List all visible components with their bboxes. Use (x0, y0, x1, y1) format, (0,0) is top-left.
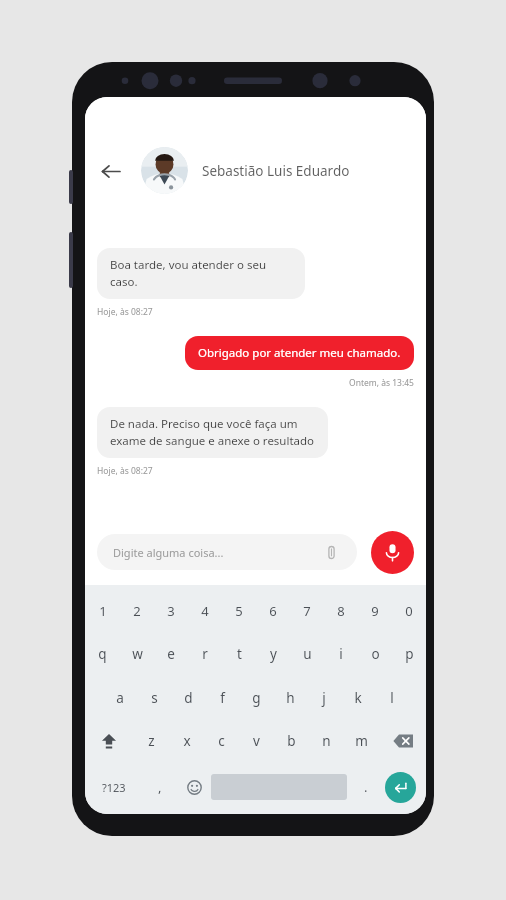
staticText: v (253, 732, 260, 750)
staticText: t (237, 645, 242, 663)
staticText: 8 (337, 602, 345, 620)
staticText: c (218, 732, 225, 750)
staticText: w (132, 645, 143, 663)
button[interactable]: Digite alguma coisa... (97, 534, 357, 570)
button[interactable]: Shift (85, 723, 133, 759)
staticText: 2 (133, 602, 141, 620)
staticText: g (252, 689, 261, 707)
staticText: e (167, 645, 175, 663)
button[interactable]: z (133, 723, 169, 759)
staticText: Hoje, às 08:27 (97, 465, 153, 477)
button[interactable]: 6 (256, 593, 290, 629)
button[interactable]: a (102, 680, 137, 716)
button[interactable]: 8 (324, 593, 358, 629)
button[interactable]: m (344, 723, 379, 759)
button[interactable]: j (307, 680, 341, 716)
staticText: Boa tarde, vou atender o seu caso. (110, 257, 292, 290)
button[interactable]: 4 (188, 593, 222, 629)
button[interactable]: 1 (85, 593, 120, 629)
staticText: k (354, 689, 362, 707)
staticText: Ontem, às 13:45 (349, 377, 414, 389)
button[interactable]: y (256, 636, 290, 672)
button[interactable]: i (324, 636, 358, 672)
button[interactable]: De nada. Preciso que você faça um exame … (97, 407, 328, 458)
button[interactable]: q (85, 636, 120, 672)
button[interactable]: Record voice message (371, 531, 414, 574)
staticText: ?123 (102, 780, 126, 795)
button[interactable]: 9 (358, 593, 392, 629)
button[interactable]: 2 (120, 593, 154, 629)
staticText: l (390, 689, 394, 707)
button[interactable]: n (309, 723, 344, 759)
staticText: s (151, 689, 158, 707)
button[interactable]: h (273, 680, 307, 716)
button[interactable]: s (137, 680, 171, 716)
staticText: m (355, 732, 368, 750)
staticText: 0 (405, 602, 413, 620)
staticText: , (158, 778, 162, 796)
button[interactable]: o (358, 636, 392, 672)
button[interactable]: g (239, 680, 273, 716)
staticText: Digite alguma coisa... (113, 545, 321, 560)
button[interactable]: t (222, 636, 256, 672)
button[interactable]: Enter (385, 772, 416, 803)
button[interactable]: w (120, 636, 154, 672)
staticText: 9 (371, 602, 379, 620)
staticText: p (405, 645, 414, 663)
button[interactable]: k (341, 680, 375, 716)
staticText: f (220, 689, 225, 707)
staticText: Hoje, às 08:27 (97, 306, 153, 318)
button[interactable]: b (274, 723, 309, 759)
button[interactable]: 0 (392, 593, 426, 629)
button[interactable]: v (239, 723, 274, 759)
staticText: a (116, 689, 124, 707)
button[interactable]: Backspace (379, 723, 426, 759)
staticText: h (286, 689, 295, 707)
staticText: De nada. Preciso que você faça um exame … (110, 416, 315, 449)
button[interactable]: Obrigado por atender meu chamado. (185, 336, 414, 370)
button[interactable]: l (375, 680, 409, 716)
staticText: 7 (303, 602, 311, 620)
button[interactable]: , (143, 767, 177, 807)
staticText: n (322, 732, 331, 750)
button[interactable]: d (171, 680, 205, 716)
button[interactable]: . (347, 767, 385, 807)
staticText: q (98, 645, 107, 663)
button[interactable]: Boa tarde, vou atender o seu caso. (97, 248, 305, 299)
staticText: y (270, 645, 277, 663)
staticText: i (339, 645, 343, 663)
staticText: Sebastião Luis Eduardo (202, 162, 350, 180)
staticText: z (148, 732, 155, 750)
button[interactable]: 7 (290, 593, 324, 629)
staticText: r (202, 645, 208, 663)
button[interactable]: c (204, 723, 239, 759)
button[interactable]: Back (91, 152, 129, 190)
staticText: x (183, 732, 191, 750)
button[interactable]: x (169, 723, 204, 759)
button[interactable]: Attach file (321, 542, 341, 562)
button[interactable]: e (154, 636, 188, 672)
button[interactable]: u (290, 636, 324, 672)
button[interactable]: 5 (222, 593, 256, 629)
button[interactable]: f (205, 680, 239, 716)
staticText: 5 (235, 602, 243, 620)
staticText: b (287, 732, 296, 750)
staticText: 6 (269, 602, 277, 620)
button[interactable]: r (188, 636, 222, 672)
staticText: 1 (99, 602, 107, 620)
staticText: o (371, 645, 380, 663)
staticText: d (184, 689, 193, 707)
staticText: 3 (167, 602, 175, 620)
staticText: 4 (201, 602, 209, 620)
button[interactable]: 3 (154, 593, 188, 629)
staticText: j (322, 689, 326, 707)
staticText: u (303, 645, 312, 663)
button[interactable]: ?123 (85, 767, 143, 807)
button[interactable]: p (392, 636, 426, 672)
staticText: Obrigado por atender meu chamado. (198, 345, 401, 361)
button[interactable]: Emoji (177, 767, 211, 807)
staticText: . (364, 778, 368, 796)
